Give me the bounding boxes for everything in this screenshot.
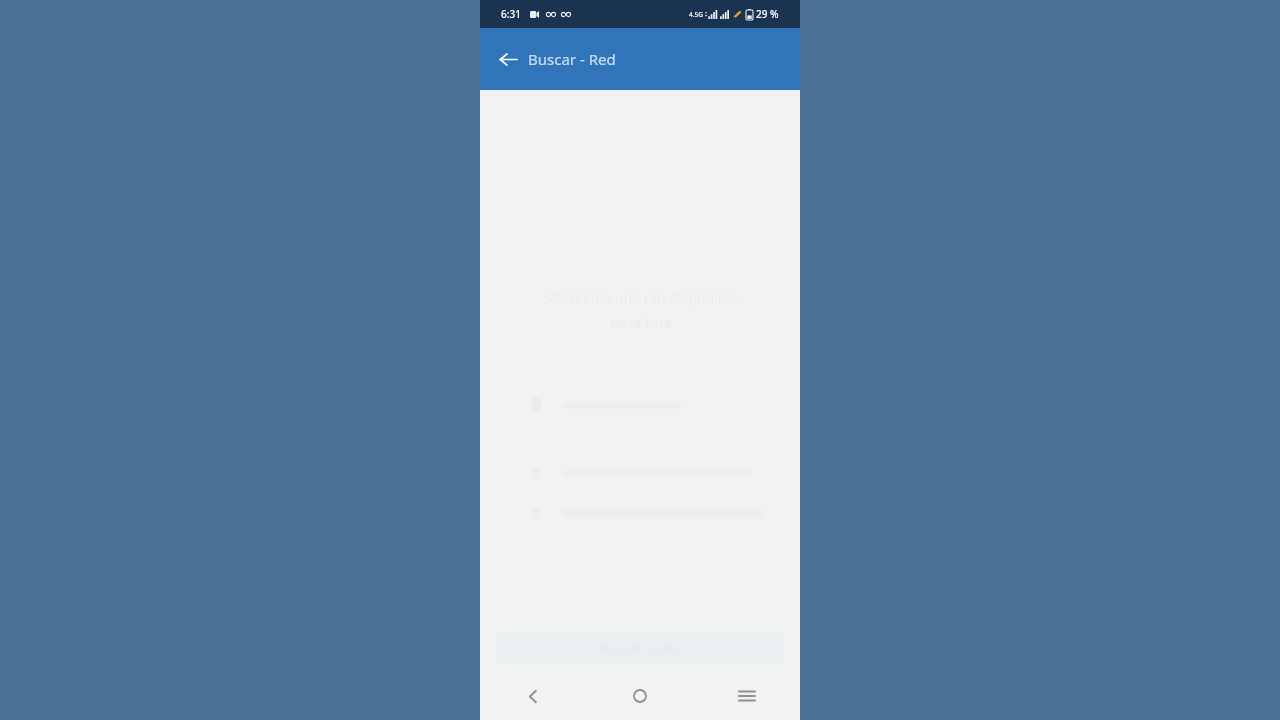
button[interactable]: Home xyxy=(586,672,693,720)
button[interactable]: Back xyxy=(480,672,586,720)
staticText: Buscar - Red xyxy=(528,49,616,69)
staticText: 4.5G xyxy=(689,10,703,19)
staticText: 29 % xyxy=(756,7,779,21)
button[interactable]: Back xyxy=(488,39,528,79)
staticText: 6:31 xyxy=(501,7,521,21)
button[interactable]: Recent apps xyxy=(693,672,800,720)
